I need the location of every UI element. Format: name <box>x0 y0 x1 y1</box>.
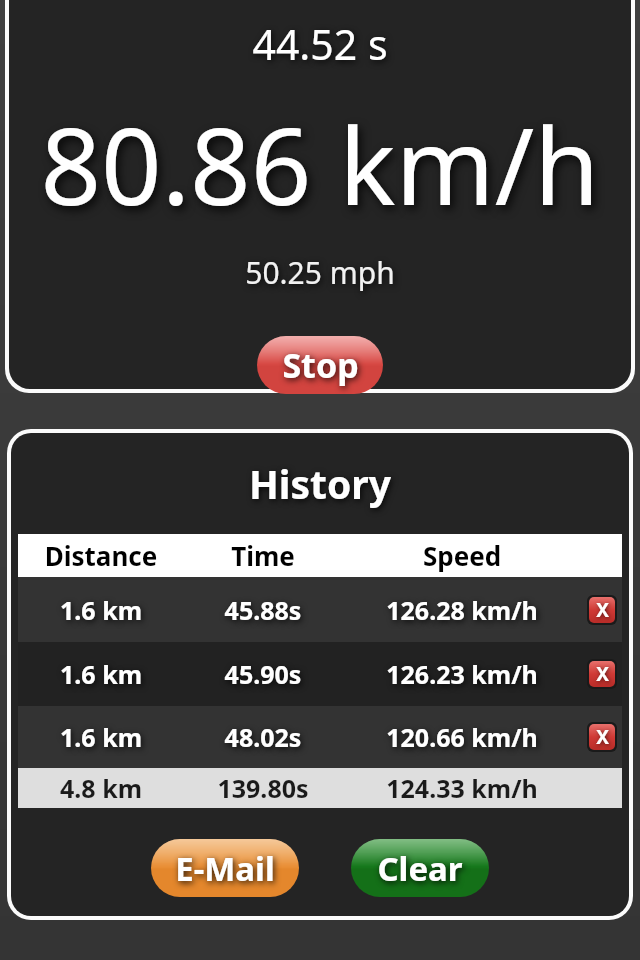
staticText: 120.66 km/h <box>342 720 582 754</box>
button[interactable]: Stop <box>257 336 383 394</box>
staticText: 1.6 km <box>18 657 184 691</box>
staticText: Stop <box>282 342 359 388</box>
staticText: 126.23 km/h <box>342 657 582 691</box>
button[interactable]: E-Mail <box>151 839 299 897</box>
staticText: Time <box>184 538 342 573</box>
staticText: Distance <box>18 538 184 573</box>
staticText: E-Mail <box>175 846 275 891</box>
staticText: 1.6 km <box>18 720 184 754</box>
staticText: X <box>596 661 609 687</box>
staticText: Speed <box>342 538 582 573</box>
staticText: 1.6 km <box>18 593 184 627</box>
staticText: History <box>11 457 629 510</box>
button[interactable]: Delete entry <box>589 724 615 750</box>
staticText: 124.33 km/h <box>342 771 582 805</box>
staticText: X <box>596 597 609 623</box>
staticText: 126.28 km/h <box>342 593 582 627</box>
staticText: 80.86 km/h <box>0 92 640 236</box>
button[interactable]: Delete entry <box>589 661 615 687</box>
staticText: 44.52 s <box>0 16 640 72</box>
staticText: 4.8 km <box>18 771 184 805</box>
staticText: 50.25 mph <box>0 252 640 293</box>
button[interactable]: Clear <box>351 839 489 897</box>
staticText: 139.80s <box>184 771 342 805</box>
staticText: 45.88s <box>184 593 342 627</box>
staticText: 45.90s <box>184 657 342 691</box>
button[interactable]: Delete entry <box>589 597 615 623</box>
staticText: 48.02s <box>184 720 342 754</box>
staticText: Clear <box>377 846 463 891</box>
staticText: X <box>596 724 609 750</box>
